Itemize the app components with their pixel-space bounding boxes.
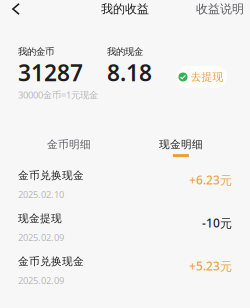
button[interactable]: 现金提现: [0, 210, 250, 253]
staticText: 2025.02.09: [18, 274, 64, 286]
button[interactable]: 金币明细: [13, 138, 125, 159]
staticText: 30000金币=1元现金: [18, 89, 98, 101]
staticText: 2025.02.10: [18, 188, 64, 200]
staticText: +5.23元: [189, 258, 232, 274]
button[interactable]: 收益说明: [196, 0, 250, 18]
staticText: 现金提现: [18, 212, 62, 225]
staticText: 收益说明: [196, 2, 244, 16]
staticText: 我的现金: [107, 46, 143, 57]
button[interactable]: 去提现: [176, 66, 227, 88]
staticText: 金币兑换现金: [18, 169, 84, 182]
button[interactable]: 现金明细: [125, 138, 237, 159]
staticText: 我的收益: [101, 2, 149, 16]
staticText: 2025.02.09: [18, 231, 64, 243]
staticText: 去提现: [190, 70, 223, 83]
staticText: +6.23元: [189, 172, 232, 188]
staticText: -10元: [202, 215, 232, 231]
button[interactable]: 金币兑换现金: [0, 167, 250, 210]
staticText: 8.18: [107, 57, 152, 88]
button[interactable]: 金币兑换现金: [0, 253, 250, 296]
staticText: 金币兑换现金: [18, 255, 84, 268]
staticText: 现金明细: [159, 138, 203, 151]
staticText: 我的金币: [18, 46, 54, 57]
staticText: 金币明细: [47, 138, 91, 151]
button[interactable]: Back: [0, 0, 32, 18]
staticText: 31287: [18, 57, 83, 88]
